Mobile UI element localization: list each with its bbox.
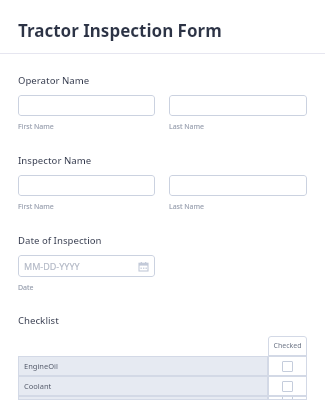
button[interactable]: Coolant checkbox [282, 381, 293, 392]
staticText: Checklist [18, 314, 59, 327]
button[interactable]: MM-DD-YYYY [18, 255, 155, 277]
button[interactable] [169, 95, 307, 116]
staticText: EngineOil [24, 361, 58, 371]
button[interactable]: Open calendar [137, 260, 149, 272]
button[interactable] [169, 175, 307, 196]
staticText: Checked [273, 341, 302, 351]
button[interactable]: EngineOil [18, 356, 307, 376]
staticText: First Name [18, 122, 54, 132]
staticText: Inspector Name [18, 154, 92, 167]
button[interactable] [18, 175, 155, 196]
staticText: Fuel [24, 396, 39, 400]
button[interactable]: Fuel [18, 396, 307, 400]
button[interactable]: Coolant [18, 376, 307, 396]
staticText: MM-DD-YYYY [24, 260, 137, 272]
staticText: Tractor Inspection Form [18, 19, 222, 42]
button[interactable]: Fuel checkbox [282, 396, 293, 400]
staticText: Date of Inspection [18, 234, 102, 247]
staticText: Date [18, 283, 34, 293]
button[interactable]: EngineOil checkbox [282, 361, 293, 372]
button[interactable] [18, 95, 155, 116]
staticText: Coolant [24, 381, 52, 391]
staticText: First Name [18, 202, 54, 212]
staticText: Last Name [169, 202, 205, 212]
staticText: Operator Name [18, 74, 90, 87]
staticText: Last Name [169, 122, 205, 132]
